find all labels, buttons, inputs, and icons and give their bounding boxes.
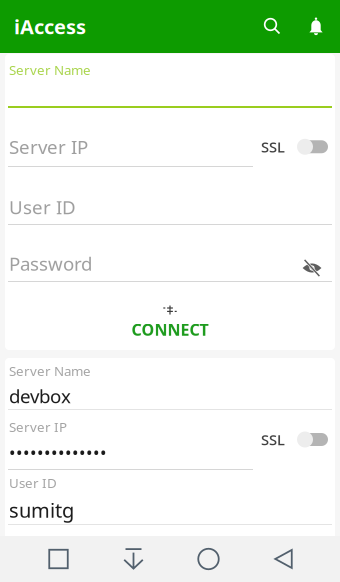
staticText: User ID bbox=[9, 195, 76, 219]
staticText: Password bbox=[9, 251, 92, 276]
staticText: Server IP bbox=[9, 418, 67, 436]
button[interactable]: Search bbox=[252, 6, 292, 46]
button[interactable]: Hide keyboard bbox=[96, 536, 171, 582]
staticText: SSL bbox=[261, 430, 285, 449]
staticText: iAccess bbox=[14, 13, 86, 40]
button[interactable]: SSL bbox=[261, 132, 332, 161]
button[interactable]: Home bbox=[171, 536, 246, 582]
staticText: •••••••••••••• bbox=[9, 441, 107, 464]
button[interactable]: Back bbox=[246, 536, 321, 582]
button[interactable]: SSL bbox=[261, 425, 332, 454]
button[interactable]: Notifications bbox=[296, 6, 336, 46]
staticText: Server Name bbox=[9, 362, 91, 380]
staticText: devbox bbox=[9, 384, 71, 408]
staticText: User ID bbox=[9, 474, 57, 492]
staticText: CONNECT bbox=[131, 319, 208, 340]
button[interactable]: Server Name bbox=[0, 350, 340, 555]
button[interactable]: Recents bbox=[21, 536, 96, 582]
staticText: Server Name bbox=[9, 61, 91, 79]
button[interactable]: CONNECT bbox=[8, 282, 332, 350]
staticText: sumitg bbox=[9, 497, 74, 523]
staticText: Server IP bbox=[9, 134, 88, 159]
staticText: SSL bbox=[261, 137, 285, 156]
